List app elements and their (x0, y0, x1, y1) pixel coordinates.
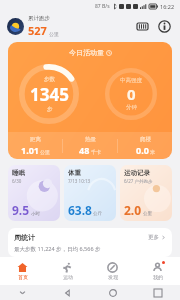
button[interactable]: 爬楼 (118, 136, 172, 156)
staticText: 体重 (68, 169, 81, 177)
staticText: 16:22 (160, 3, 175, 10)
staticText: 累计跑步 (28, 15, 50, 22)
button[interactable]: Info (156, 18, 172, 34)
button[interactable]: 运动 (45, 257, 90, 285)
button[interactable]: Back (45, 285, 90, 300)
staticText: 中高强度 (120, 77, 142, 84)
staticText: 米 (150, 149, 155, 155)
button[interactable] (7, 18, 24, 35)
button[interactable]: 睡眠 (8, 165, 60, 221)
button[interactable]: 距离 (8, 136, 62, 156)
button[interactable]: 运动记录 (120, 165, 172, 221)
staticText: 睡眠 (12, 169, 25, 177)
staticText: 9.5 (12, 202, 30, 218)
staticText: 千卡 (91, 149, 101, 155)
button[interactable]: 首页 (0, 257, 45, 285)
staticText: 48 (79, 144, 90, 156)
button[interactable]: 体重 (64, 165, 116, 221)
button[interactable]: 发现 (90, 257, 135, 285)
staticText: 87 B/s (95, 3, 110, 10)
staticText: 今日活动量 (69, 48, 104, 57)
staticText: 周统计 (14, 233, 35, 242)
staticText: 距离 (30, 136, 41, 143)
staticText: 6/27 户外跑步 (124, 178, 153, 184)
button[interactable]: 周统计 (8, 228, 172, 257)
staticText: 小时 (31, 211, 40, 217)
staticText: 步 (47, 106, 53, 113)
button[interactable]: Home (90, 285, 135, 300)
staticText: 分钟 (126, 104, 137, 111)
button[interactable]: 我的 (135, 257, 180, 285)
staticText: 0 (127, 84, 136, 104)
staticText: 热量 (85, 136, 96, 143)
staticText: 7/13 10:13 (68, 178, 91, 184)
staticText: 2.0 (124, 202, 142, 218)
staticText: 运动 (63, 274, 73, 280)
staticText: 0.0 (136, 144, 149, 156)
button[interactable]: Recents (135, 285, 180, 300)
staticText: 63.8 (68, 202, 92, 218)
staticText: 527 (28, 23, 47, 38)
staticText: 我的 (153, 274, 163, 280)
staticText: 发现 (108, 274, 118, 280)
staticText: 公斤 (93, 211, 102, 217)
staticText: 公里 (49, 31, 59, 37)
staticText: 最大步数 11,224 步，日均 6,566 步 (14, 245, 101, 253)
staticText: 公里 (143, 211, 152, 217)
staticText: 爬楼 (140, 136, 151, 143)
staticText: 1345 (30, 83, 69, 106)
staticText: 公里 (40, 149, 50, 155)
staticText: 首页 (18, 274, 28, 280)
button[interactable]: 今日活动量 (8, 42, 172, 159)
staticText: 运动记录 (124, 169, 150, 177)
staticText: 更多 (148, 234, 159, 241)
staticText: 6/30 (12, 178, 22, 184)
button[interactable]: 热量 (63, 136, 117, 156)
staticText: 步数 (44, 76, 55, 83)
button[interactable]: Hide (0, 285, 45, 300)
staticText: 1.01 (21, 144, 39, 156)
button[interactable]: Scan card (134, 18, 150, 34)
